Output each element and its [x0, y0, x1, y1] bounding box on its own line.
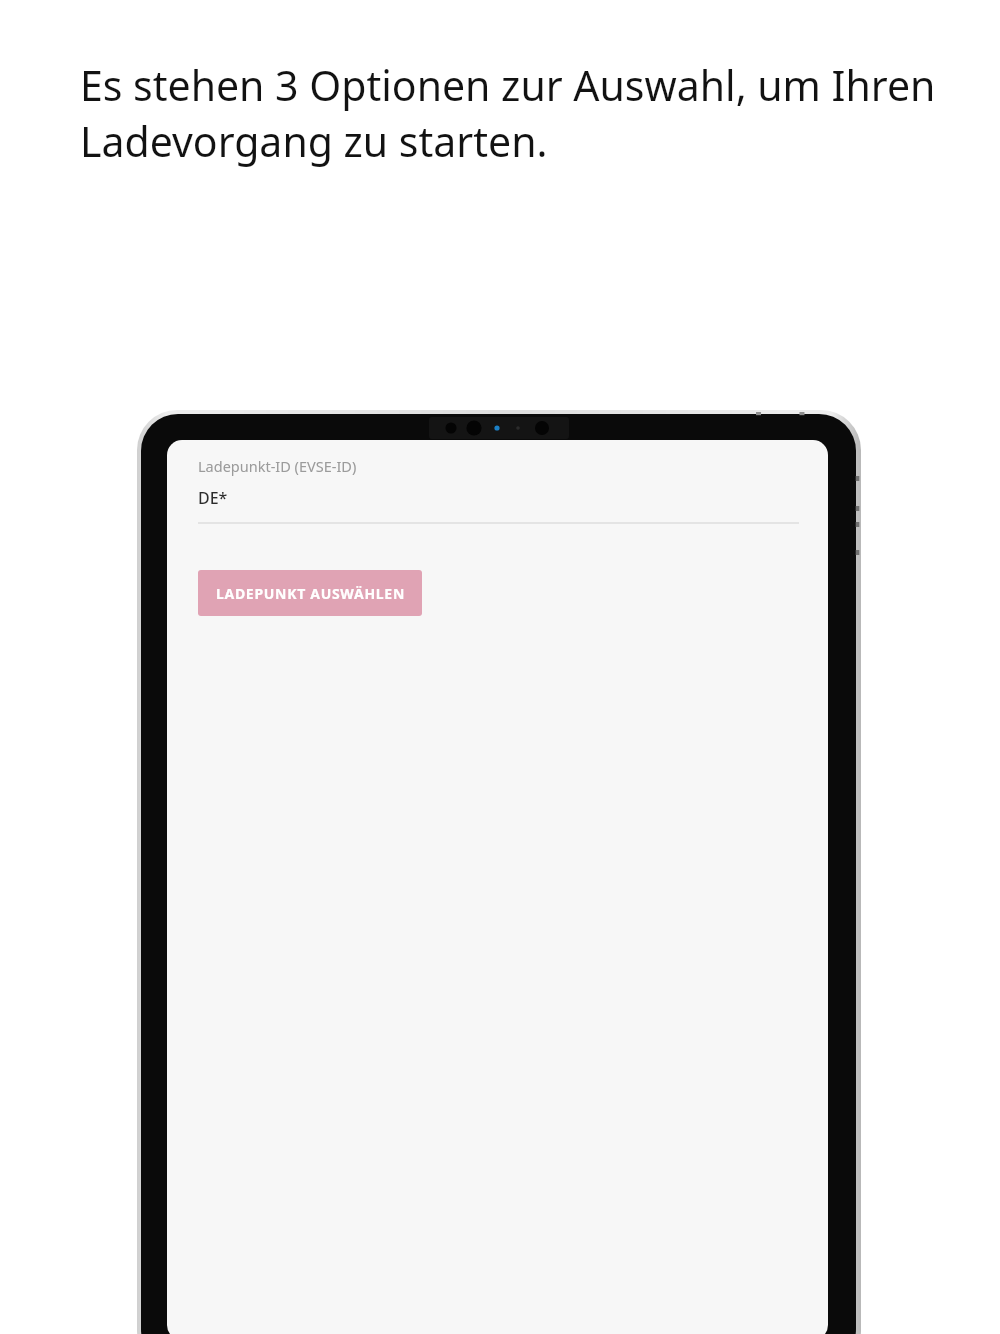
button[interactable]: DE* — [198, 487, 799, 524]
staticText: Es stehen 3 Optionen zur Auswahl, um Ihr… — [80, 57, 936, 113]
staticText: LADEPUNKT AUSWÄHLEN — [216, 584, 405, 603]
button[interactable]: Ladepunkt auswählen — [198, 570, 422, 616]
staticText: DE* — [198, 487, 228, 509]
staticText: Ladevorgang zu starten. — [80, 113, 548, 169]
staticText: Ladepunkt-ID (EVSE-ID) — [198, 456, 357, 476]
